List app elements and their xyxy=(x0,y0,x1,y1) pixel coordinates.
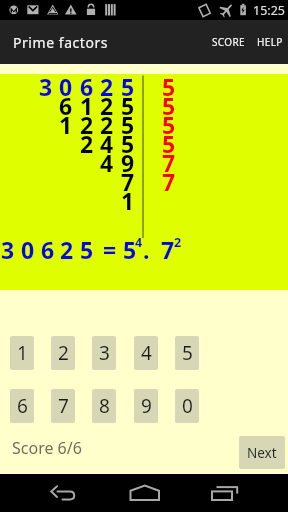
staticText: 0 xyxy=(59,71,71,102)
staticText: 6 xyxy=(59,90,71,121)
staticText: 4 xyxy=(141,340,152,366)
staticText: 5 xyxy=(162,90,176,121)
staticText: 1 xyxy=(59,109,71,140)
staticText: 9 xyxy=(121,147,133,178)
staticText: 7 xyxy=(162,147,176,178)
button[interactable]: Next xyxy=(239,436,285,469)
button[interactable]: 3 xyxy=(92,336,116,370)
button[interactable]: Home xyxy=(130,479,158,507)
staticText: 5 xyxy=(182,340,193,366)
button[interactable]: 7 xyxy=(51,389,75,423)
staticText: 2 xyxy=(80,109,92,140)
staticText: 5 xyxy=(121,109,133,140)
staticText: 5 xyxy=(162,71,176,102)
button[interactable]: 1 xyxy=(10,336,34,370)
staticText: Next xyxy=(247,444,277,462)
button[interactable]: SCORE xyxy=(206,20,251,64)
staticText: 1 xyxy=(80,90,92,121)
staticText: 7 xyxy=(121,166,133,197)
staticText: 3 xyxy=(99,340,110,366)
staticText: 2 xyxy=(100,71,112,102)
staticText: . xyxy=(143,234,150,265)
staticText: 6 xyxy=(41,234,55,265)
staticText: 5 xyxy=(121,128,133,159)
button[interactable]: 5 xyxy=(175,336,199,370)
staticText: 0 xyxy=(21,234,35,265)
staticText: 6 xyxy=(17,393,28,419)
staticText: HELP xyxy=(257,35,283,49)
staticText: 5 xyxy=(121,71,133,102)
staticText: 2 xyxy=(174,234,182,251)
staticText: 7 xyxy=(161,234,175,265)
staticText: 3 xyxy=(1,234,15,265)
staticText: 0 xyxy=(182,393,193,419)
staticText: 3 xyxy=(39,71,51,102)
staticText: = xyxy=(103,234,117,265)
button[interactable]: Recent apps xyxy=(204,479,232,507)
button[interactable]: 9 xyxy=(134,389,158,423)
staticText: 4 xyxy=(135,234,143,251)
staticText: 8 xyxy=(99,393,110,419)
staticText: 6 xyxy=(80,71,92,102)
button[interactable]: 8 xyxy=(92,389,116,423)
staticText: 4 xyxy=(100,147,112,178)
staticText: 2 xyxy=(100,90,112,121)
staticText: 5 xyxy=(80,234,94,265)
staticText: 7 xyxy=(58,393,69,419)
button[interactable]: 4 xyxy=(134,336,158,370)
button[interactable]: 0 xyxy=(175,389,199,423)
staticText: 4 xyxy=(100,128,112,159)
button[interactable]: Back xyxy=(56,479,84,507)
staticText: Score 6/6 xyxy=(12,437,82,459)
staticText: Prime factors xyxy=(13,33,109,52)
button[interactable]: 6 xyxy=(10,389,34,423)
staticText: 2 xyxy=(58,340,69,366)
staticText: 1 xyxy=(17,340,28,366)
staticText: 2 xyxy=(100,109,112,140)
button[interactable]: 2 xyxy=(51,336,75,370)
staticText: 5 xyxy=(162,128,176,159)
staticText: 1 xyxy=(121,185,133,216)
staticText: 5 xyxy=(162,109,176,140)
staticText: 2 xyxy=(60,234,74,265)
staticText: 5 xyxy=(121,90,133,121)
staticText: 15:25 xyxy=(253,2,285,19)
staticText: 9 xyxy=(141,393,152,419)
staticText: 7 xyxy=(162,166,176,197)
staticText: 5 xyxy=(123,234,137,265)
button[interactable]: HELP xyxy=(252,20,287,64)
staticText: SCORE xyxy=(212,35,245,49)
staticText: 2 xyxy=(80,128,92,159)
